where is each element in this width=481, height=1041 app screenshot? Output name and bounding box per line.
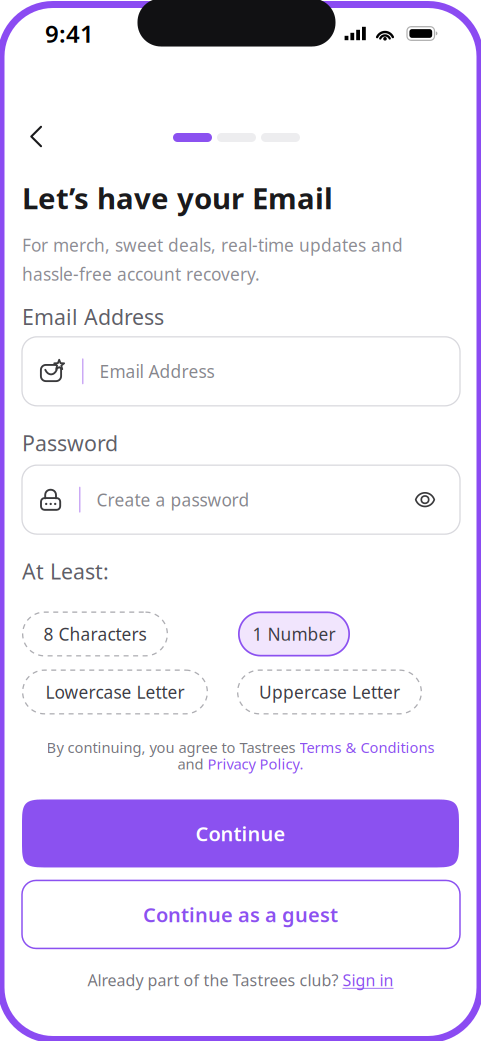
staticText: Privacy Policy.: [207, 754, 303, 773]
button[interactable]: 1 Number: [238, 611, 350, 656]
staticText: Let’s have your Email: [22, 178, 333, 217]
staticText: Terms & Conditions: [299, 737, 434, 757]
staticText: Email Address: [22, 302, 164, 331]
staticText: Email Address: [99, 360, 214, 383]
staticText: At Least:: [22, 557, 109, 585]
staticText: Create a password: [96, 488, 249, 511]
button[interactable]: Back: [14, 113, 58, 157]
button[interactable]: Already part of the Tastrees club?: [87, 969, 393, 991]
staticText: Uppercase Letter: [259, 680, 400, 703]
staticText: and: [177, 754, 207, 773]
staticText: 9:41: [45, 18, 94, 49]
button[interactable]: Lowercase Letter: [22, 669, 208, 714]
staticText: Password: [22, 429, 118, 457]
staticText: Already part of the Tastrees club?: [87, 969, 342, 991]
staticText: Continue as a guest: [143, 901, 338, 928]
button[interactable]: Continue as a guest: [22, 880, 459, 948]
button[interactable]: Uppercase Letter: [237, 669, 422, 714]
staticText: 8 Characters: [43, 622, 146, 645]
staticText: By continuing, you agree to Tastrees: [46, 737, 299, 757]
button[interactable]: Continue: [22, 799, 459, 867]
staticText: Continue: [195, 820, 285, 847]
staticText: Lowercase Letter: [45, 680, 184, 703]
staticText: For merch, sweet deals, real-time update…: [22, 233, 403, 285]
staticText: 1 Number: [252, 622, 335, 645]
button[interactable]: Show password: [403, 478, 447, 522]
button[interactable]: 8 Characters: [22, 611, 168, 656]
staticText: Sign in: [342, 969, 393, 991]
